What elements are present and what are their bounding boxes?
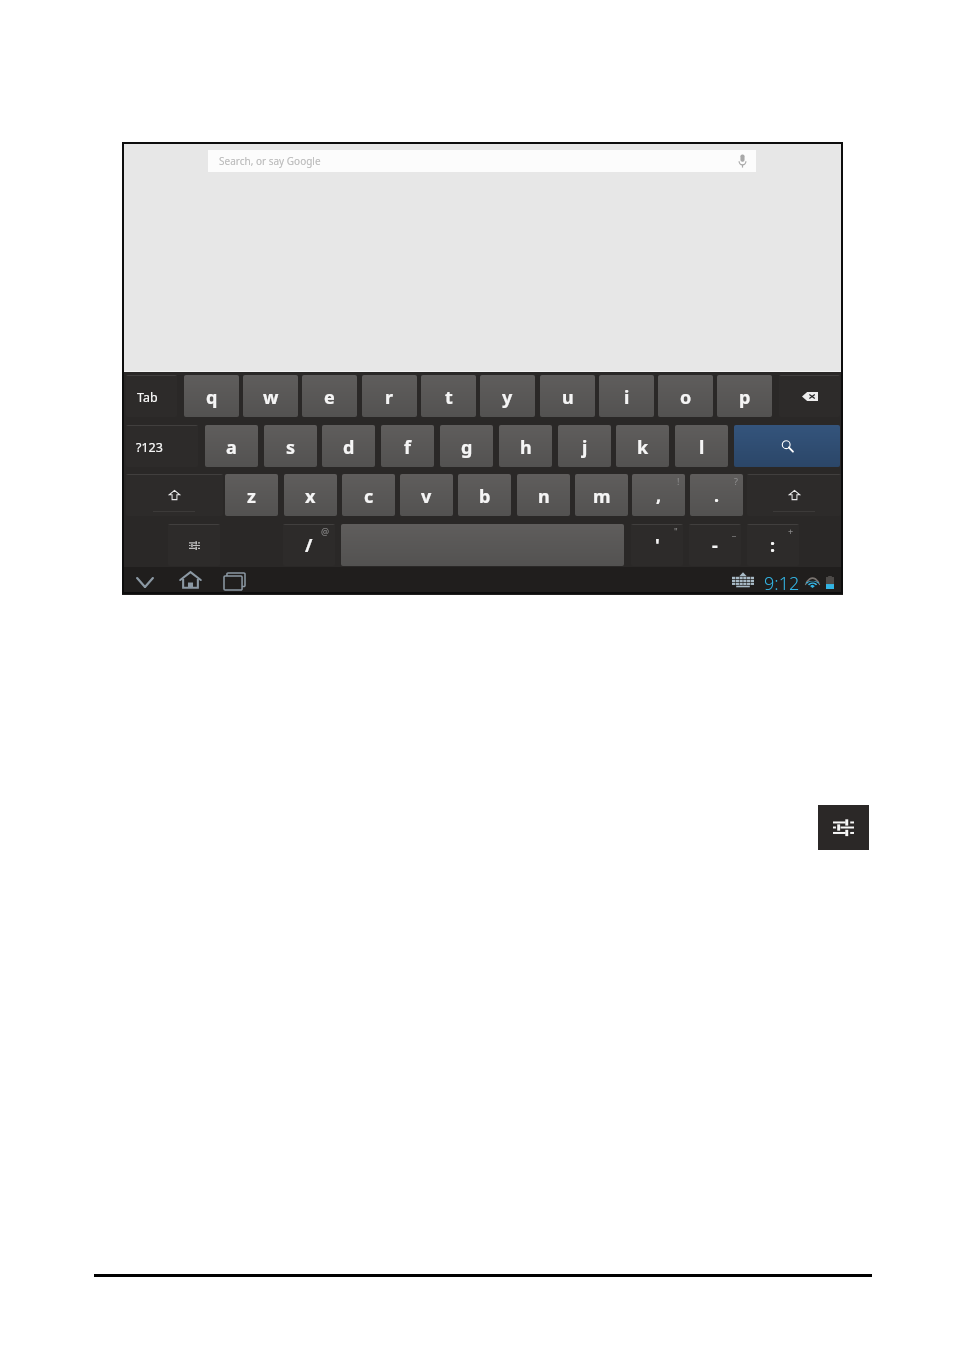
button[interactable]: n: [517, 474, 570, 516]
staticText: j: [582, 435, 588, 460]
staticText: l: [699, 435, 705, 460]
button[interactable]: ?123: [126, 425, 198, 467]
staticText: ?123: [136, 439, 163, 456]
staticText: -: [712, 533, 718, 558]
staticText: k: [637, 435, 649, 460]
staticText: +: [788, 525, 794, 537]
button[interactable]: Space: [341, 524, 624, 566]
button[interactable]: r: [362, 375, 417, 417]
staticText: ,: [656, 483, 662, 508]
button[interactable]: Recents: [216, 567, 253, 595]
button[interactable]: a: [205, 425, 258, 467]
staticText: ': [655, 533, 660, 558]
button[interactable]: Settings: [818, 805, 869, 850]
staticText: r: [385, 385, 394, 410]
staticText: d: [343, 435, 355, 460]
staticText: Search, or say Google: [219, 154, 321, 168]
staticText: h: [520, 435, 532, 460]
button[interactable]: _: [689, 524, 741, 566]
button[interactable]: i: [599, 375, 654, 417]
staticText: ": [674, 525, 678, 537]
staticText: v: [421, 484, 432, 509]
staticText: @: [321, 525, 330, 537]
button[interactable]: q: [184, 375, 239, 417]
staticText: /: [305, 533, 313, 558]
button[interactable]: Home: [171, 566, 210, 594]
staticText: f: [404, 435, 411, 460]
staticText: n: [538, 484, 550, 509]
staticText: p: [739, 385, 751, 410]
button[interactable]: [126, 474, 223, 516]
staticText: o: [680, 385, 692, 410]
button[interactable]: z: [225, 474, 278, 516]
button[interactable]: Search, or say Google: [208, 150, 756, 172]
button[interactable]: [168, 524, 220, 566]
staticText: q: [206, 385, 218, 410]
button[interactable]: j: [558, 425, 611, 467]
button[interactable]: Back: [128, 571, 162, 594]
staticText: g: [461, 435, 473, 460]
staticText: t: [445, 385, 453, 410]
staticText: y: [502, 385, 513, 410]
staticText: _: [732, 525, 736, 537]
button[interactable]: g: [440, 425, 493, 467]
staticText: 9:12: [764, 571, 800, 596]
button[interactable]: [779, 375, 840, 417]
button[interactable]: x: [284, 474, 337, 516]
button[interactable]: h: [499, 425, 552, 467]
staticText: :: [770, 533, 776, 558]
button[interactable]: d: [322, 425, 375, 467]
staticText: .: [714, 483, 720, 508]
button[interactable]: y: [480, 375, 535, 417]
staticText: Tab: [137, 389, 158, 406]
button[interactable]: Search: [734, 425, 840, 467]
button[interactable]: t: [421, 375, 476, 417]
button[interactable]: b: [458, 474, 511, 516]
staticText: e: [324, 385, 335, 410]
button[interactable]: f: [381, 425, 434, 467]
button[interactable]: c: [342, 474, 395, 516]
button[interactable]: w: [243, 375, 298, 417]
staticText: c: [364, 484, 374, 509]
button[interactable]: Tab: [126, 375, 177, 417]
button[interactable]: m: [575, 474, 628, 516]
staticText: x: [305, 484, 316, 509]
button[interactable]: s: [264, 425, 317, 467]
staticText: a: [226, 435, 237, 460]
button[interactable]: v: [400, 474, 453, 516]
button[interactable]: o: [658, 375, 713, 417]
button[interactable]: k: [616, 425, 669, 467]
staticText: w: [263, 385, 279, 410]
button[interactable]: ": [631, 524, 683, 566]
staticText: ?: [734, 475, 738, 487]
staticText: !: [677, 475, 680, 487]
button[interactable]: ?: [690, 474, 743, 516]
button[interactable]: @: [283, 524, 335, 566]
staticText: s: [286, 435, 296, 460]
button[interactable]: u: [540, 375, 595, 417]
button[interactable]: l: [675, 425, 728, 467]
button[interactable]: +: [747, 524, 799, 566]
staticText: u: [562, 385, 574, 410]
button[interactable]: [747, 474, 841, 516]
button[interactable]: !: [632, 474, 685, 516]
button[interactable]: p: [717, 375, 772, 417]
button[interactable]: e: [302, 375, 357, 417]
staticText: b: [479, 484, 491, 509]
staticText: m: [593, 484, 611, 509]
staticText: i: [624, 385, 630, 410]
staticText: z: [247, 484, 256, 509]
